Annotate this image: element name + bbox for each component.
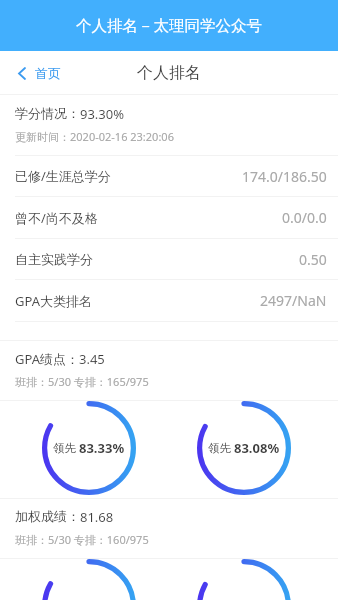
staticText: 班排：5/30 专排：165/975 (15, 374, 149, 389)
staticText: 3.45 (79, 350, 105, 368)
staticText: 领先 (208, 440, 234, 456)
staticText: 2497/NaN (260, 291, 327, 310)
button[interactable]: GPA大类排名 (0, 280, 338, 321)
staticText: 个人排名－太理同学公众号 (76, 16, 262, 36)
staticText: 领先 (53, 440, 79, 456)
staticText: 93.30% (80, 105, 125, 123)
staticText: GPA绩点： (15, 350, 79, 368)
staticText: 0.50 (299, 250, 327, 269)
staticText: 班排：5/30 专排：160/975 (15, 532, 149, 547)
staticText: 81.68 (80, 508, 114, 526)
staticText: 加权成绩： (15, 508, 80, 524)
staticText: 83.33% (79, 439, 125, 457)
staticText: 学分情况： (15, 105, 80, 121)
button[interactable]: 首页 (18, 65, 61, 81)
staticText: GPA大类排名 (15, 292, 92, 310)
staticText: 曾不/尚不及格 (15, 209, 98, 227)
button[interactable]: 曾不/尚不及格 (0, 197, 338, 238)
staticText: 174.0/186.50 (242, 167, 327, 186)
staticText: 更新时间：2020-02-16 23:20:06 (15, 129, 174, 144)
staticText: 已修/生涯总学分 (15, 167, 111, 185)
button[interactable]: 自主实践学分 (0, 239, 338, 279)
button[interactable]: 已修/生涯总学分 (0, 156, 338, 196)
staticText: 83.08% (234, 439, 280, 457)
staticText: 0.0/0.0 (282, 208, 327, 227)
staticText: 自主实践学分 (15, 251, 93, 267)
staticText: 首页 (35, 65, 61, 81)
staticText: 个人排名 (137, 63, 201, 83)
